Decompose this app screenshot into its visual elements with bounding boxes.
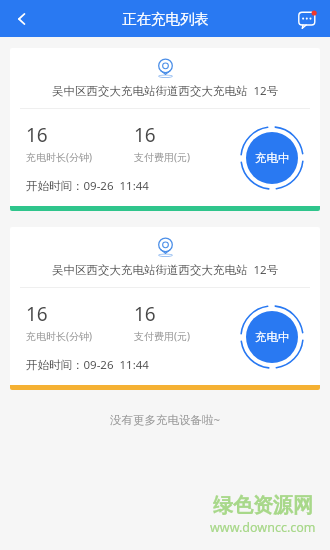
button[interactable]: 充电中 bbox=[240, 305, 304, 369]
staticText: 吴中区西交大充电站街道西交大充电站 12号 bbox=[52, 262, 279, 278]
staticText: 16 bbox=[26, 301, 48, 327]
staticText: 吴中区西交大充电站街道西交大充电站 12号 bbox=[52, 83, 279, 99]
button[interactable]: 充电中 bbox=[240, 126, 304, 190]
staticText: 没有更多充电设备啦~ bbox=[0, 412, 330, 428]
staticText: 充电中 bbox=[255, 330, 290, 344]
staticText: 绿色资源网 bbox=[213, 493, 313, 518]
staticText: 开始时间：09-26 11:44 bbox=[26, 357, 149, 373]
staticText: 16 bbox=[134, 122, 156, 148]
staticText: 开始时间：09-26 11:44 bbox=[26, 178, 149, 194]
button[interactable]: Back bbox=[6, 3, 38, 35]
staticText: 支付费用(元) bbox=[134, 329, 190, 343]
button[interactable]: 吴中区西交大充电站街道西交大充电站 12号 bbox=[10, 48, 320, 211]
staticText: 正在充电列表 bbox=[122, 10, 209, 28]
button[interactable]: Messages bbox=[293, 4, 323, 34]
button[interactable]: 吴中区西交大充电站街道西交大充电站 12号 bbox=[10, 227, 320, 390]
staticText: 支付费用(元) bbox=[134, 150, 190, 164]
staticText: 充电时长(分钟) bbox=[26, 150, 92, 164]
staticText: 充电中 bbox=[255, 151, 290, 165]
staticText: 充电时长(分钟) bbox=[26, 329, 92, 343]
staticText: 16 bbox=[26, 122, 48, 148]
staticText: 16 bbox=[134, 301, 156, 327]
staticText: www.downcc.com bbox=[210, 519, 316, 536]
